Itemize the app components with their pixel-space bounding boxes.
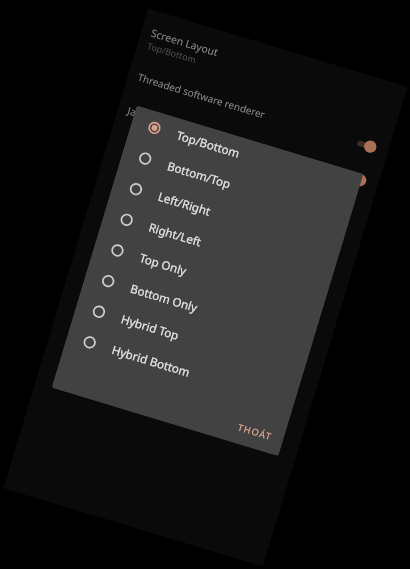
button[interactable]: Screen Layout: [135, 20, 404, 132]
staticText: Top Only: [137, 250, 189, 280]
button[interactable]: Java renderer: [114, 92, 382, 200]
button[interactable]: THOÁT: [230, 415, 280, 449]
staticText: Screen Layout: [149, 26, 220, 59]
staticText: Left/Right: [156, 189, 213, 220]
button[interactable]: Top Only: [90, 228, 327, 327]
staticText: Hybrid Bottom: [110, 342, 192, 381]
staticText: Threaded software renderer: [136, 70, 354, 148]
button[interactable]: Top/Bottom: [127, 105, 364, 204]
staticText: Hybrid Top: [119, 311, 181, 344]
staticText: Java renderer: [126, 103, 343, 181]
button[interactable]: Bottom/Top: [118, 136, 354, 235]
button[interactable]: Threaded software renderer: [124, 58, 393, 166]
staticText: Top/Bottom: [146, 39, 198, 65]
button[interactable]: Left/Right: [109, 167, 345, 266]
button[interactable]: Bottom Only: [81, 258, 317, 358]
button[interactable]: Toggle Java renderer: [339, 168, 368, 189]
staticText: THOÁT: [236, 421, 274, 444]
button[interactable]: Toggle Threaded software renderer: [350, 134, 378, 155]
staticText: Bottom Only: [128, 281, 200, 316]
button[interactable]: Hybrid Top: [72, 289, 308, 388]
button[interactable]: Hybrid Bottom: [63, 320, 299, 419]
staticText: Right/Left: [147, 219, 204, 251]
button[interactable]: Right/Left: [100, 197, 336, 296]
staticText: Bottom/Top: [165, 158, 233, 193]
staticText: Top/Bottom: [174, 127, 242, 162]
